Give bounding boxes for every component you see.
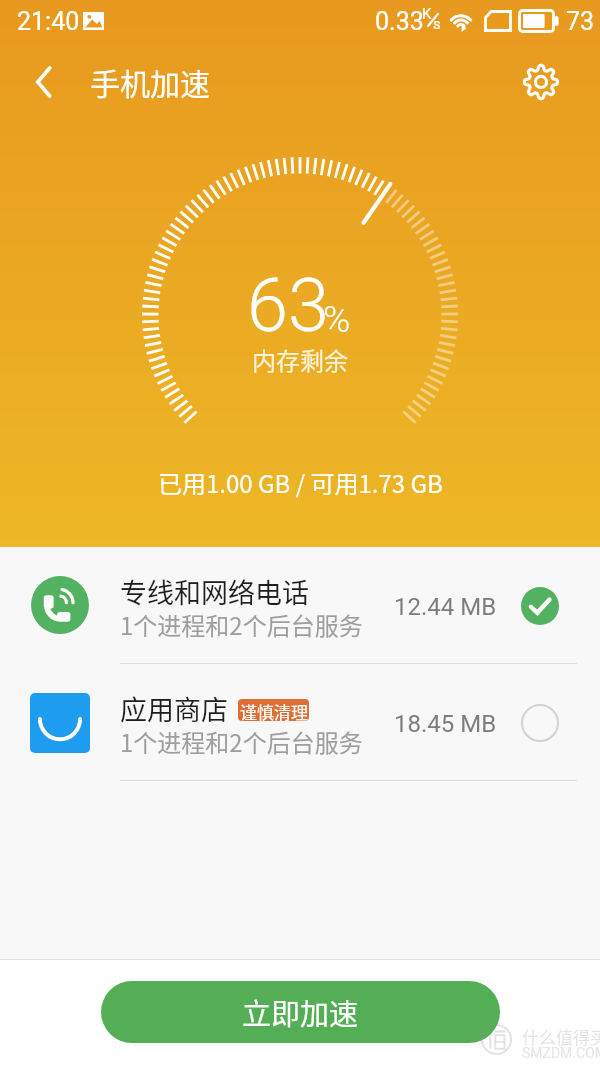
button[interactable]: Settings (511, 52, 571, 112)
staticText: 内存剩余 (252, 342, 348, 377)
staticText: K (422, 5, 432, 23)
staticText: 73 (566, 7, 595, 36)
staticText: 什么值得买 (522, 1024, 600, 1049)
button[interactable]: Not selected (521, 704, 559, 742)
staticText: 1个进程和2个后台服务 (120, 607, 363, 642)
staticText: 1个进程和2个后台服务 (120, 724, 363, 759)
staticText: 0.33 (375, 7, 424, 36)
staticText: 21:40 (17, 7, 80, 36)
staticText: 立即加速 (242, 991, 359, 1033)
staticText: 手机加速 (90, 60, 210, 103)
button[interactable]: 应用商店 (0, 664, 600, 781)
button[interactable]: Selected (521, 587, 559, 625)
staticText: 12.44 MB (394, 593, 497, 621)
staticText: 谨慎清理 (240, 699, 308, 721)
button[interactable]: Back (13, 52, 73, 112)
staticText: % (323, 298, 351, 341)
staticText: 63 (247, 262, 330, 349)
staticText: 18.45 MB (394, 710, 497, 738)
staticText: s (433, 15, 441, 33)
staticText: 已用1.00 GB / 可用1.73 GB (158, 465, 443, 500)
staticText: SMZDM.COM (522, 1045, 600, 1061)
button[interactable]: 立即加速 (101, 981, 500, 1043)
button[interactable]: 专线和网络电话 (0, 547, 600, 664)
staticText: 应用商店 (120, 689, 228, 728)
staticText: 专线和网络电话 (120, 572, 309, 611)
